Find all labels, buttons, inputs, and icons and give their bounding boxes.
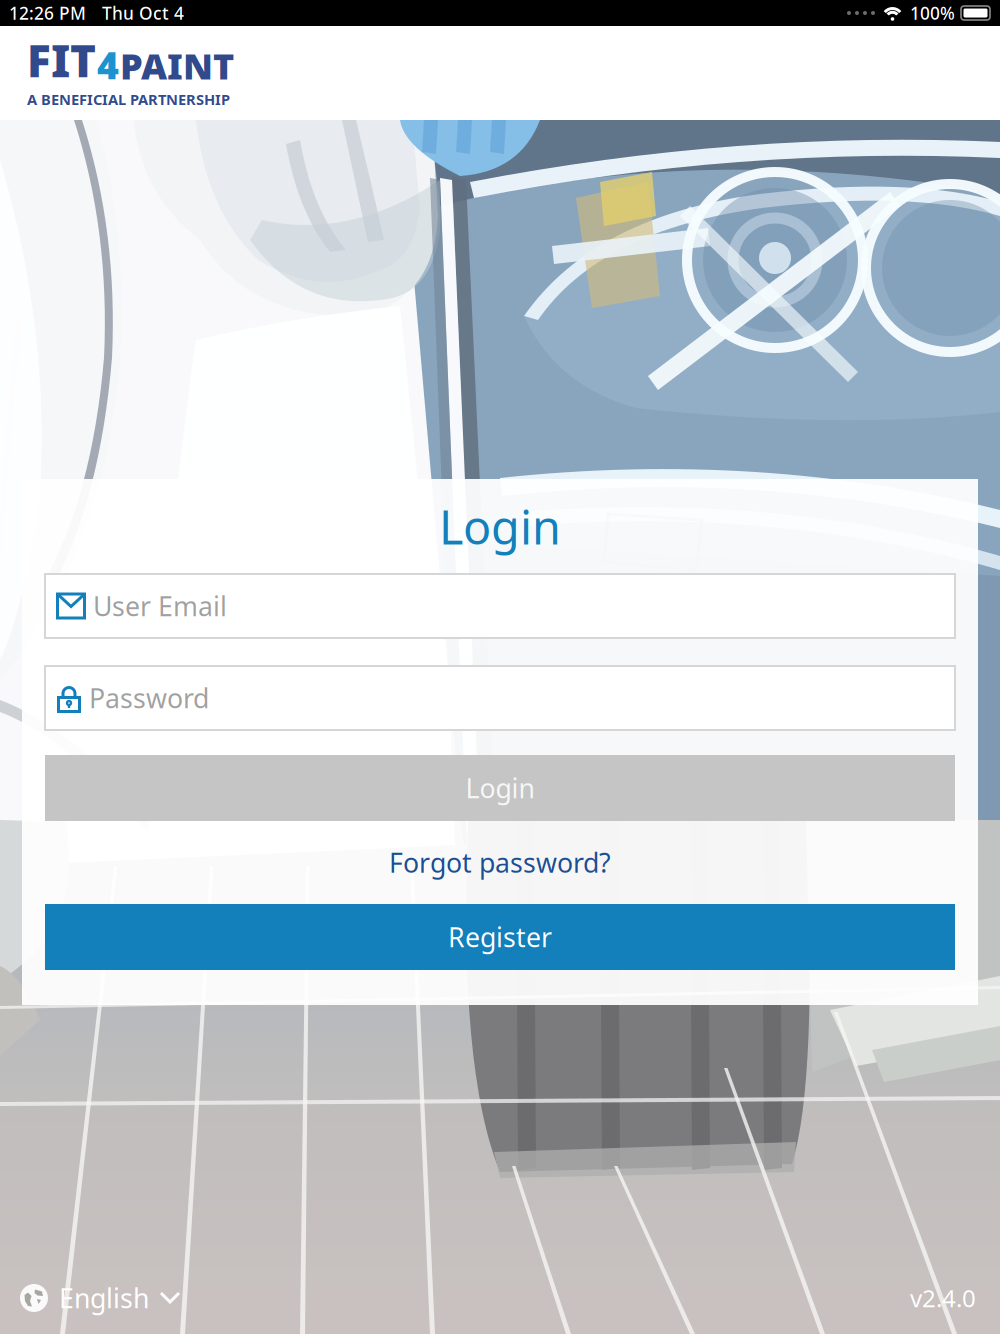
button[interactable]: Register bbox=[45, 904, 955, 970]
staticText: Thu Oct 4 bbox=[102, 1, 184, 24]
staticText: v2.4.0 bbox=[910, 1282, 976, 1314]
staticText: 12:26 PM bbox=[9, 1, 86, 24]
staticText: Register bbox=[448, 919, 552, 955]
staticText: A BENEFICIAL PARTNERSHIP bbox=[27, 89, 230, 109]
staticText: English bbox=[59, 1280, 149, 1316]
button[interactable]: Forgot password? bbox=[45, 821, 955, 904]
staticText: Forgot password? bbox=[389, 845, 611, 880]
staticText: Password bbox=[89, 680, 209, 716]
button[interactable]: Login bbox=[45, 755, 955, 821]
staticText: 100% bbox=[910, 1, 955, 24]
staticText: Login bbox=[465, 770, 534, 806]
staticText: User Email bbox=[93, 588, 227, 624]
staticText: Login bbox=[439, 495, 561, 557]
staticText: 4 bbox=[97, 40, 119, 89]
button[interactable]: English bbox=[0, 1270, 197, 1326]
staticText: PAINT bbox=[120, 42, 234, 89]
staticText: FIT bbox=[27, 31, 96, 89]
